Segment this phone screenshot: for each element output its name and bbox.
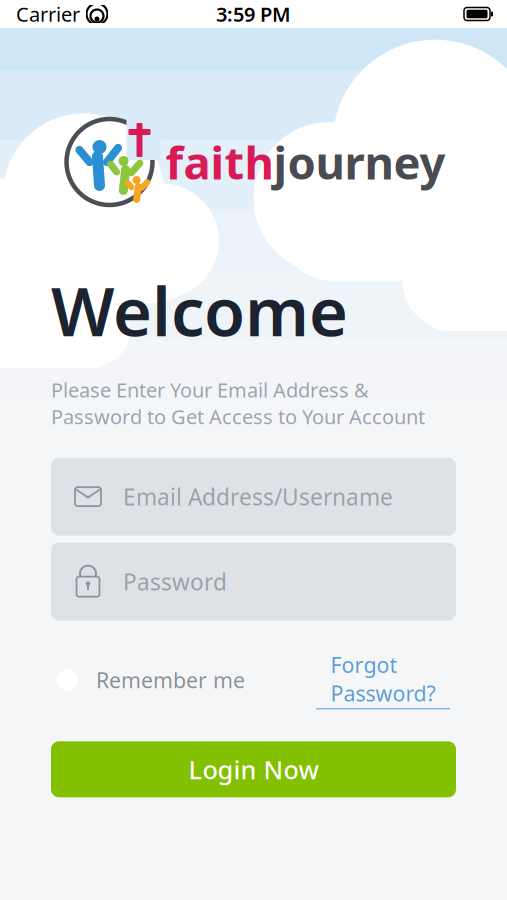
button[interactable]: Forgot Password? xyxy=(316,643,450,717)
staticText: Login Now xyxy=(188,752,318,786)
staticText: Email Address/Username xyxy=(123,482,393,512)
button[interactable]: Password xyxy=(51,543,456,621)
staticText: Carrier xyxy=(16,1,80,27)
button[interactable]: Email Address/Username xyxy=(51,458,456,536)
staticText: journey xyxy=(273,132,445,192)
button[interactable]: Remember me xyxy=(57,658,245,702)
staticText: Welcome xyxy=(51,266,348,354)
staticText: faith xyxy=(165,132,273,192)
staticText: 3:59 PM xyxy=(216,1,291,27)
staticText: Forgot Password? xyxy=(330,651,435,707)
staticText: Please Enter Your Email Address & Passwo… xyxy=(51,376,425,430)
staticText: Remember me xyxy=(96,666,245,694)
staticText: Password xyxy=(123,567,227,597)
button[interactable]: Login Now xyxy=(51,741,456,797)
